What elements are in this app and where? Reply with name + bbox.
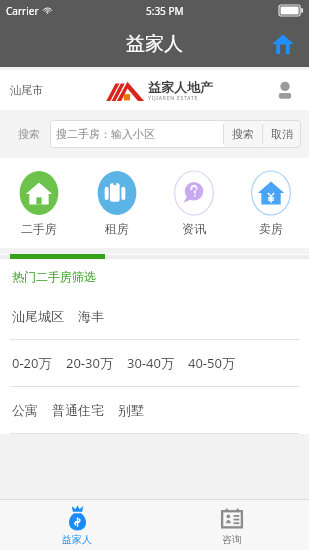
button[interactable]: 取消 bbox=[263, 120, 301, 148]
button[interactable]: 汕尾市 bbox=[10, 83, 43, 97]
staticText: 5:35 PM bbox=[146, 4, 184, 18]
button[interactable]: 租房 bbox=[78, 158, 155, 248]
button[interactable]: 益家人 bbox=[0, 500, 154, 550]
staticText: 取消 bbox=[271, 127, 293, 141]
staticText: 益家人 bbox=[126, 32, 183, 56]
button[interactable]: 资讯 bbox=[155, 158, 232, 248]
staticText: 二手房 bbox=[21, 221, 57, 236]
staticText: 公寓 bbox=[12, 402, 38, 418]
button[interactable]: 公寓 bbox=[12, 402, 38, 418]
button[interactable]: 40-50万 bbox=[188, 354, 235, 372]
button[interactable]: 卖房 bbox=[232, 158, 309, 248]
button[interactable]: 搜索 bbox=[18, 127, 40, 141]
staticText: 资讯 bbox=[182, 221, 206, 236]
button[interactable]: 20-30万 bbox=[66, 354, 113, 372]
button[interactable]: 普通住宅 bbox=[52, 402, 104, 418]
button[interactable]: 30-40万 bbox=[127, 354, 174, 372]
staticText: 20-30万 bbox=[66, 354, 113, 372]
staticText: 海丰 bbox=[78, 308, 104, 324]
staticText: 40-50万 bbox=[188, 354, 235, 372]
staticText: 普通住宅 bbox=[52, 402, 104, 418]
staticText: YIJIAREN ESTATE bbox=[148, 95, 199, 102]
button[interactable]: 海丰 bbox=[78, 308, 104, 324]
button[interactable]: 二手房 bbox=[0, 158, 78, 248]
staticText: Carrier bbox=[6, 4, 39, 18]
staticText: 咨询 bbox=[222, 533, 242, 546]
staticText: 汕尾城区 bbox=[12, 308, 64, 324]
staticText: 益家人地产 bbox=[148, 79, 213, 95]
button[interactable]: 汕尾城区 bbox=[12, 308, 64, 324]
staticText: 0-20万 bbox=[12, 354, 52, 372]
staticText: 益家人 bbox=[62, 533, 92, 546]
button[interactable]: 咨询 bbox=[154, 500, 309, 550]
staticText: 热门二手房筛选 bbox=[12, 269, 96, 284]
staticText: 卖房 bbox=[259, 221, 283, 236]
button[interactable]: 0-20万 bbox=[12, 354, 52, 372]
button[interactable]: 别墅 bbox=[118, 402, 144, 418]
staticText: 别墅 bbox=[118, 402, 144, 418]
staticText: 租房 bbox=[105, 221, 129, 236]
button[interactable]: Profile bbox=[271, 76, 299, 104]
staticText: 搜索 bbox=[232, 127, 254, 141]
staticText: 搜二手房：输入小区 bbox=[56, 127, 155, 141]
button[interactable]: Home bbox=[267, 28, 299, 60]
button[interactable]: 搜索 bbox=[224, 120, 262, 148]
staticText: 30-40万 bbox=[127, 354, 174, 372]
